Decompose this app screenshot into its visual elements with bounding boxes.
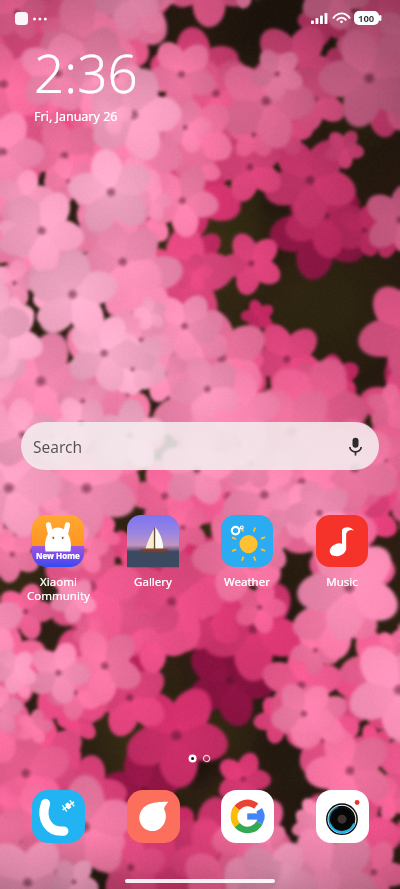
- staticText: 2:36: [34, 36, 138, 108]
- staticText: 100: [358, 12, 375, 25]
- staticText: Music: [326, 574, 358, 590]
- staticText: Xiaomi Community: [27, 574, 90, 603]
- button[interactable]: Camera: [298, 789, 386, 843]
- button[interactable]: Weather: [203, 515, 291, 590]
- staticText: New Home: [36, 550, 80, 561]
- button[interactable]: Phone: [14, 789, 102, 843]
- button[interactable]: Gallery: [109, 515, 197, 590]
- staticText: Weather: [224, 574, 270, 590]
- staticText: Search: [33, 436, 83, 457]
- button[interactable]: Xiaomi Community: [14, 515, 102, 603]
- staticText: Fri, January 26: [34, 108, 118, 125]
- button[interactable]: Google: [203, 789, 291, 843]
- staticText: Gallery: [134, 574, 172, 590]
- button[interactable]: Search: [21, 422, 379, 470]
- button[interactable]: Music: [298, 515, 386, 590]
- button[interactable]: Messages: [109, 789, 197, 843]
